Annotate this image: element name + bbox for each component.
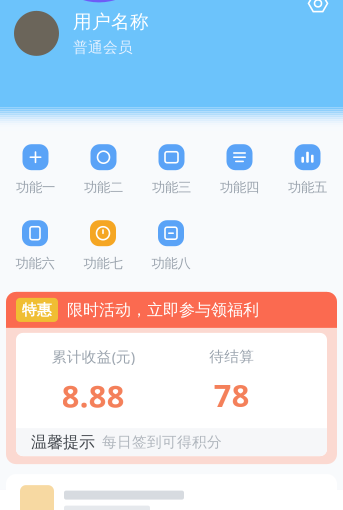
staticText: 温馨提示 [31,432,95,452]
staticText: 功能六 [15,255,54,272]
staticText: 功能四 [220,179,259,196]
staticText: 限时活动，立即参与领福利 [67,300,259,320]
staticText: 功能八 [151,255,190,272]
staticText: 功能一 [16,179,55,196]
staticText: 功能三 [152,179,191,196]
staticText: 功能二 [84,179,123,196]
staticText: 8.88 [62,375,125,416]
staticText: 普通会员 [73,38,133,56]
staticText: 功能七 [83,255,122,272]
button[interactable] [0,464,343,510]
staticText: 用户名称 [73,10,149,33]
button[interactable]: 功能一 [1,142,69,198]
button[interactable]: 功能三 [137,142,205,198]
staticText: 每日签到可得积分 [102,433,222,451]
button[interactable]: 功能二 [69,142,137,198]
button[interactable]: 功能七 [69,218,137,274]
button[interactable]: 功能四 [205,142,273,198]
staticText: 78 [214,375,250,415]
staticText: 特惠 [22,301,52,319]
staticText: 累计收益(元) [52,347,135,366]
button[interactable]: Settings [303,0,333,18]
button[interactable]: 温馨提示 [16,428,327,456]
button[interactable]: 功能五 [273,142,341,198]
button[interactable]: 功能六 [1,218,69,274]
staticText: 功能五 [288,179,327,196]
button[interactable]: 功能八 [137,218,205,274]
staticText: 待结算 [209,348,254,366]
